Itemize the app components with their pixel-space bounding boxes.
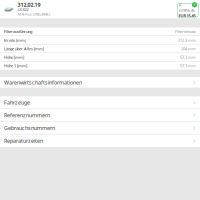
staticText: Höhe 1 [mm] <box>4 63 27 68</box>
staticText: Referenznummern <box>4 112 50 119</box>
staticText: Reparaturzeiten <box>4 137 43 144</box>
button[interactable]: Referenznummern <box>0 109 200 121</box>
staticText: 312.02.19 <box>17 1 40 8</box>
staticText: EUR15.45 <box>178 13 195 18</box>
staticText: Filterausführung <box>4 29 32 34</box>
staticText: Breite [mm] <box>4 37 26 43</box>
staticText: Länge über Alles [mm] <box>4 46 44 51</box>
button[interactable]: Gebrauchsnummern <box>0 122 200 134</box>
button[interactable]: Fahrzeuge <box>0 96 200 109</box>
staticText: Filtereinsatz <box>175 29 196 34</box>
staticText: 212.3 mm <box>178 37 196 43</box>
staticText: Fahrzeuge <box>4 99 30 106</box>
staticText: Gebrauchsnummern <box>4 124 55 132</box>
staticText: LX 822 <box>17 7 28 12</box>
staticText: 204 mm <box>181 46 196 51</box>
staticText: 57.3 mm <box>180 63 196 68</box>
staticText: MAHLE ORIGINAL <box>17 11 50 17</box>
button[interactable]: Warenwirtschaftsinformationen <box>0 77 200 88</box>
button[interactable]: Preis und Warenkorb <box>177 3 198 17</box>
staticText: 57.3 mm <box>180 54 196 60</box>
staticText: EUR16.36 <box>178 7 194 13</box>
staticText: Höhe [mm] <box>4 54 24 60</box>
staticText: Warenwirtschaftsinformationen <box>4 79 82 86</box>
button[interactable]: Reparaturzeiten <box>0 135 200 147</box>
